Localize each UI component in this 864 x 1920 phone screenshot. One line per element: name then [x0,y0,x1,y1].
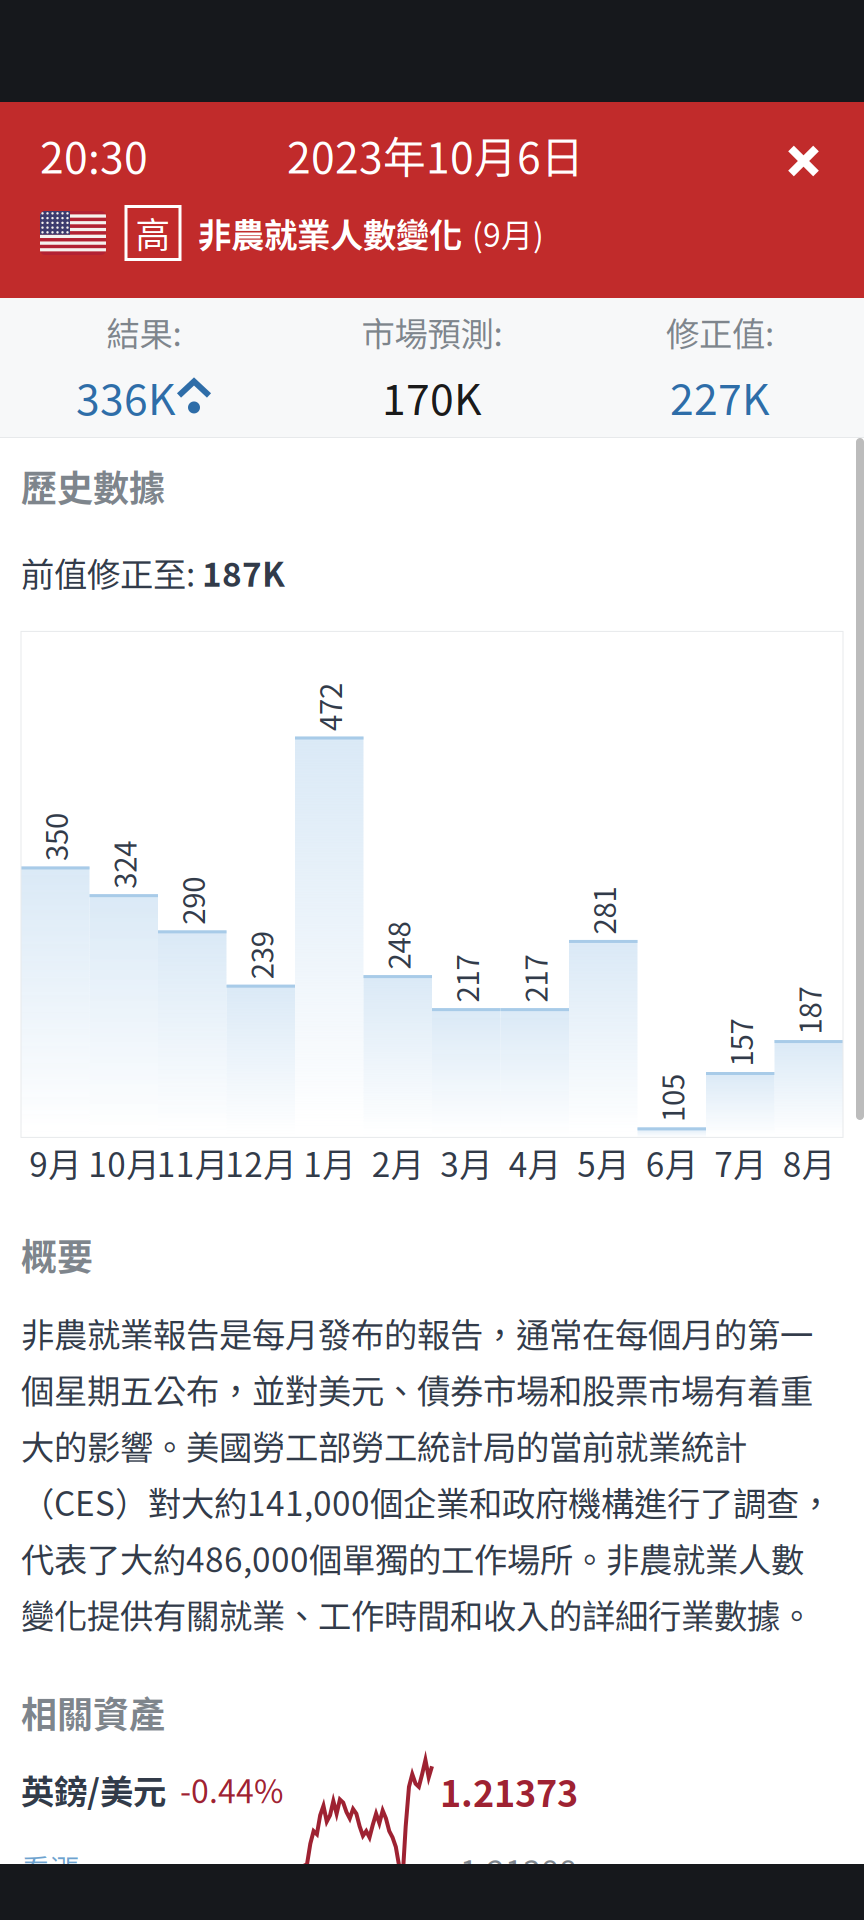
staticText: 歷史數據 [21,460,165,512]
staticText: -0.44% [180,1766,283,1812]
staticText: 472 [305,686,353,728]
staticText: 2月 [372,1138,424,1187]
staticText: 227K [670,366,770,427]
staticText: 9月 [29,1138,81,1187]
staticText: 非農就業報告是每月發布的報告，通常在每個月的第一個星期五公布，並對美元、債券市場… [21,1308,832,1638]
staticText: 248 [374,924,422,967]
staticText: 170K [382,366,482,427]
staticText: 英鎊/美元 [21,1765,166,1813]
staticText: 324 [100,843,148,886]
staticText: 高 [135,208,170,258]
staticText: 市場預測: [361,308,502,356]
staticText: 336K [76,366,176,427]
staticText: 3月 [440,1138,492,1187]
staticText: 1.21388 [460,1847,577,1893]
staticText: 前值修正至: [21,548,202,596]
staticText: 290 [168,880,216,922]
staticText: 105 [648,1077,696,1119]
button[interactable]: 英鎊/美元 [0,1754,864,1914]
staticText: 8月 [783,1138,835,1187]
staticText: 20:30 [40,124,148,186]
staticText: 6月 [646,1138,698,1187]
staticText: 157 [716,1021,764,1064]
staticText: 1月 [303,1138,355,1187]
staticText: 217 [442,957,490,1000]
staticText: 217 [511,957,559,1000]
staticText: 結果: [106,308,181,356]
staticText: 相關資產 [21,1686,165,1738]
staticText: 概要 [21,1228,93,1280]
staticText: 12月 [225,1138,296,1187]
staticText: 187K [202,548,285,596]
staticText: 350 [31,816,79,858]
staticText: 4月 [509,1138,561,1187]
button[interactable]: Close [758,114,864,195]
staticText: 187 [785,989,833,1032]
staticText: 修正值: [666,308,774,356]
staticText: 281 [579,889,627,932]
staticText: 10月 [88,1138,159,1187]
staticText: 11月 [157,1138,228,1187]
staticText: 2023年10月6日 [287,124,584,186]
staticText: 5月 [577,1138,629,1187]
staticText: 239 [237,934,285,976]
staticText: 非農就業人數變化 [198,209,462,257]
staticText: 看漲 [21,1847,79,1890]
staticText: (9月) [472,210,544,256]
staticText: 1.21373 [440,1765,578,1817]
staticText: 7月 [714,1138,766,1187]
